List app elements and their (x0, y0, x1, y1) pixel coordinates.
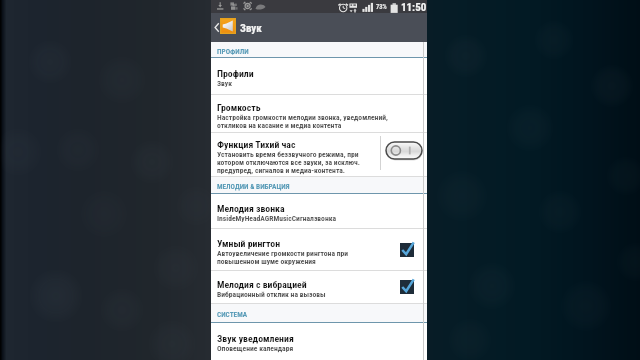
staticText: InsideMyHeadAGRMusicСигналзвонка (217, 214, 337, 223)
button[interactable]: Громкость (211, 95, 427, 133)
button[interactable]: Профили (211, 58, 427, 95)
staticText: Звук (240, 22, 262, 35)
staticText: МЕЛОДИИ & ВИБРАЦИЯ (217, 182, 290, 191)
staticText: Установить время беззвучного режима, при… (217, 150, 375, 175)
button[interactable]: Мелодия с вибрацией (211, 271, 427, 304)
staticText: ПРОФИЛИ (217, 47, 249, 56)
staticText: Настройка громкости мелодии звонка, увед… (217, 113, 395, 130)
staticText: 73% (376, 3, 387, 11)
button[interactable]: Quiet hours toggle (386, 142, 422, 159)
button[interactable]: Checkbox (399, 279, 415, 294)
staticText: Оповещение календаря (217, 344, 294, 353)
button[interactable]: Checkbox (399, 242, 415, 257)
button[interactable]: Функция Тихий час (211, 133, 427, 177)
staticText: Мелодия звонка (217, 203, 285, 214)
button[interactable]: Звук уведомления (211, 323, 427, 360)
staticText: Умный рингтон (217, 238, 281, 249)
other: Back (213, 22, 221, 33)
staticText: СИСТЕМА (217, 310, 248, 319)
staticText: Громкость (217, 102, 261, 113)
staticText: Функция Тихий час (217, 139, 296, 150)
button[interactable]: Умный рингтон (211, 229, 427, 271)
staticText: Вибрационный отклик на вызовы (217, 290, 326, 299)
button[interactable]: Back (211, 13, 427, 42)
staticText: Звук (217, 79, 233, 88)
staticText: Звук уведомления (217, 333, 294, 344)
staticText: Профили (217, 68, 254, 79)
staticText: Автоувеличение громкости рингтона при по… (217, 249, 375, 266)
staticText: Мелодия с вибрацией (217, 279, 307, 290)
button[interactable]: Мелодия звонка (211, 194, 427, 229)
staticText: 11:50 (401, 1, 427, 14)
